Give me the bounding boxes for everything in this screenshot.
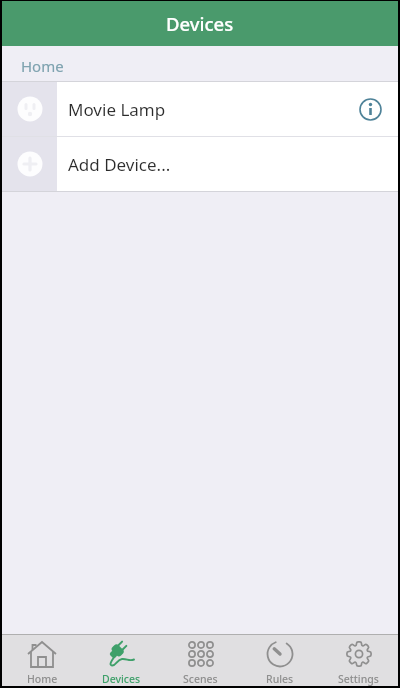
button[interactable] [350,89,390,129]
button[interactable]: Scenes [161,635,240,686]
staticText: Devices [102,672,141,686]
button[interactable]: Movie Lamp [2,82,398,136]
staticText: Home [27,672,58,686]
button[interactable]: Devices [82,635,161,686]
button[interactable]: Home [2,635,82,686]
staticText: Scenes [183,672,218,686]
staticText: Settings [338,672,379,686]
staticText: Movie Lamp [68,98,166,121]
staticText: Devices [166,11,234,36]
staticText: Home [21,56,64,76]
staticText: Add Device... [68,153,171,176]
button[interactable]: Settings [319,635,398,686]
button[interactable]: Add Device... [2,137,398,191]
staticText: Rules [266,672,294,686]
button[interactable]: Rules [240,635,319,686]
